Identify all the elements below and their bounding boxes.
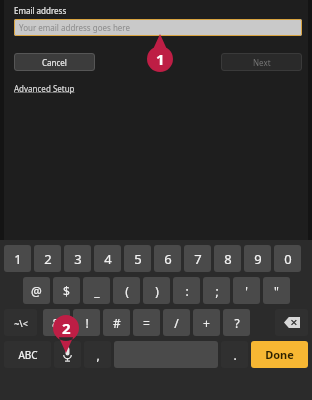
staticText: 1 [14, 250, 22, 268]
staticText: 6 [164, 250, 172, 268]
staticText: = [143, 315, 150, 331]
staticText: 4 [104, 250, 112, 268]
staticText: / [174, 315, 179, 331]
button[interactable]: Cancel [14, 53, 95, 71]
button[interactable]: & [43, 309, 70, 336]
staticText: Next [253, 57, 271, 68]
staticText: & [52, 315, 61, 331]
button[interactable]: 6 [154, 245, 181, 272]
staticText: ? [234, 315, 240, 331]
button[interactable]: 2 [34, 245, 61, 272]
button[interactable]: ! [73, 309, 100, 336]
button[interactable]: , [84, 341, 111, 368]
staticText: : [185, 283, 189, 299]
staticText: ) [155, 283, 159, 299]
button[interactable]: ( [113, 277, 140, 304]
staticText: 9 [254, 250, 262, 268]
button[interactable]: ; [203, 277, 230, 304]
button[interactable]: Your email address goes here [14, 19, 302, 36]
staticText: Email address [14, 5, 67, 16]
staticText: _ [94, 283, 100, 299]
button[interactable]: Voice input [54, 341, 81, 368]
button[interactable]: key [275, 309, 308, 336]
button[interactable]: ~\< [4, 309, 37, 336]
button[interactable]: 1 [4, 245, 31, 272]
button[interactable]: " [263, 277, 290, 304]
staticText: ! [85, 315, 89, 331]
staticText: 3 [74, 250, 82, 268]
staticText: $ [63, 283, 70, 299]
staticText: 5 [134, 250, 142, 268]
staticText: , [96, 347, 100, 363]
staticText: 7 [194, 250, 202, 268]
button[interactable]: 5 [124, 245, 151, 272]
staticText: @ [31, 283, 42, 299]
button[interactable]: / [163, 309, 190, 336]
button[interactable]: : [173, 277, 200, 304]
button[interactable]: ABC [4, 341, 51, 368]
staticText: # [113, 315, 121, 331]
staticText: Advanced Setup [14, 83, 75, 94]
staticText: + [203, 315, 210, 331]
button[interactable]: 7 [184, 245, 211, 272]
staticText: 2 [62, 318, 71, 338]
button[interactable]: ' [233, 277, 260, 304]
button[interactable]: $ [53, 277, 80, 304]
button[interactable]: # [103, 309, 130, 336]
staticText: ~\< [14, 317, 28, 329]
button[interactable]: Advanced Setup [14, 83, 75, 94]
staticText: 8 [224, 250, 232, 268]
staticText: 0 [284, 250, 292, 268]
staticText: ABC [18, 348, 38, 362]
button[interactable]: = [133, 309, 160, 336]
button[interactable]: 3 [64, 245, 91, 272]
button[interactable]: 4 [94, 245, 121, 272]
button[interactable]: ) [143, 277, 170, 304]
button[interactable]: 0 [274, 245, 301, 272]
staticText: 1 [156, 49, 165, 69]
staticText: Done [265, 347, 294, 362]
staticText: ( [125, 283, 129, 299]
button[interactable]: @ [23, 277, 50, 304]
button[interactable]: . [221, 341, 248, 368]
button[interactable]: ? [223, 309, 250, 336]
button[interactable]: Done [251, 341, 308, 368]
button[interactable]: _ [83, 277, 110, 304]
staticText: Cancel [42, 57, 67, 68]
staticText: " [274, 283, 279, 299]
staticText: ' [245, 283, 248, 299]
staticText: Your email address goes here [19, 22, 131, 33]
staticText: 2 [44, 250, 52, 268]
button[interactable]: Next [221, 53, 302, 71]
button[interactable]: + [193, 309, 220, 336]
staticText: ; [215, 283, 219, 299]
button[interactable]: 8 [214, 245, 241, 272]
staticText: . [233, 347, 237, 363]
button[interactable]: 9 [244, 245, 271, 272]
